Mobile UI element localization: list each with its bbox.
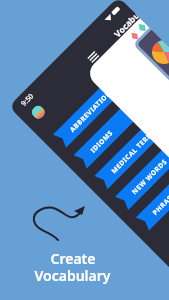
button[interactable]: Create Vocabulary app preview — [0, 0, 169, 300]
